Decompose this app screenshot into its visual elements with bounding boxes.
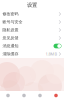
staticText: 设置 (27, 2, 37, 8)
button[interactable]: Me (48, 91, 64, 100)
button[interactable]: Home (0, 91, 16, 100)
staticText: 1.8MB (45, 51, 57, 57)
staticText: 隐私设置 (2, 27, 18, 32)
button[interactable]: 清除缓存 (0, 50, 64, 58)
staticText: 意见反馈 (2, 35, 18, 40)
button[interactable]: Discover (16, 91, 32, 100)
button[interactable]: 账号与安全 (0, 18, 64, 26)
staticText: 修改密码 (2, 11, 18, 16)
button[interactable]: 消息通知 (0, 42, 64, 50)
button[interactable]: 隐私设置 (0, 26, 64, 34)
staticText: 消息通知 (2, 43, 18, 48)
staticText: 清除缓存 (2, 51, 18, 56)
button[interactable]: 修改密码 (0, 10, 64, 18)
button[interactable]: Messages (32, 91, 48, 100)
staticText: 账号与安全 (2, 19, 22, 24)
button[interactable]: 意见反馈 (0, 34, 64, 42)
